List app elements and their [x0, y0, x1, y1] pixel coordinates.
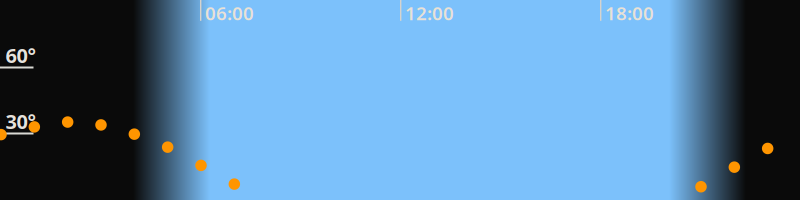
- staticText: 12:00: [405, 0, 454, 25]
- staticText: 60°: [5, 42, 35, 69]
- staticText: 06:00: [205, 0, 254, 25]
- staticText: 30°: [5, 108, 35, 135]
- staticText: 18:00: [605, 0, 654, 25]
